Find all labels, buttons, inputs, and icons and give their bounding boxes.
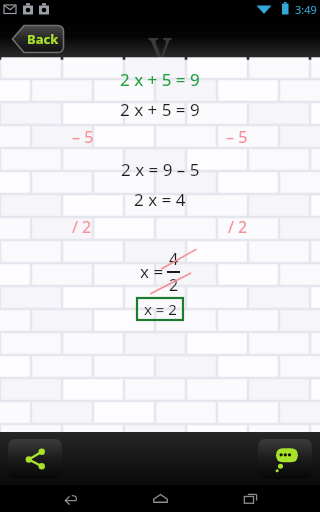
button[interactable]: Back	[11, 24, 65, 54]
staticText: / 2	[72, 216, 92, 238]
staticText: 3:49	[295, 2, 317, 17]
staticText: x = 2	[144, 299, 177, 319]
staticText: 2	[169, 274, 179, 294]
staticText: – 5	[72, 126, 94, 148]
button[interactable]: Recent apps	[229, 485, 273, 512]
staticText: 2 x + 5 = 9	[120, 68, 200, 91]
staticText: 2 x = 9 – 5	[121, 158, 200, 181]
staticText: 2 x + 5 = 9	[120, 98, 200, 121]
button[interactable]: Share	[8, 439, 62, 479]
button[interactable]: Back	[47, 485, 91, 512]
staticText: x =	[140, 260, 164, 283]
staticText: 2 x = 4	[134, 188, 186, 211]
staticText: / 2	[228, 216, 248, 238]
button[interactable]: Home	[138, 485, 182, 512]
staticText: Back	[27, 30, 59, 48]
button[interactable]: Comments	[258, 439, 312, 479]
staticText: 4	[169, 248, 179, 270]
staticText: y	[148, 16, 172, 58]
staticText: – 5	[226, 126, 248, 148]
